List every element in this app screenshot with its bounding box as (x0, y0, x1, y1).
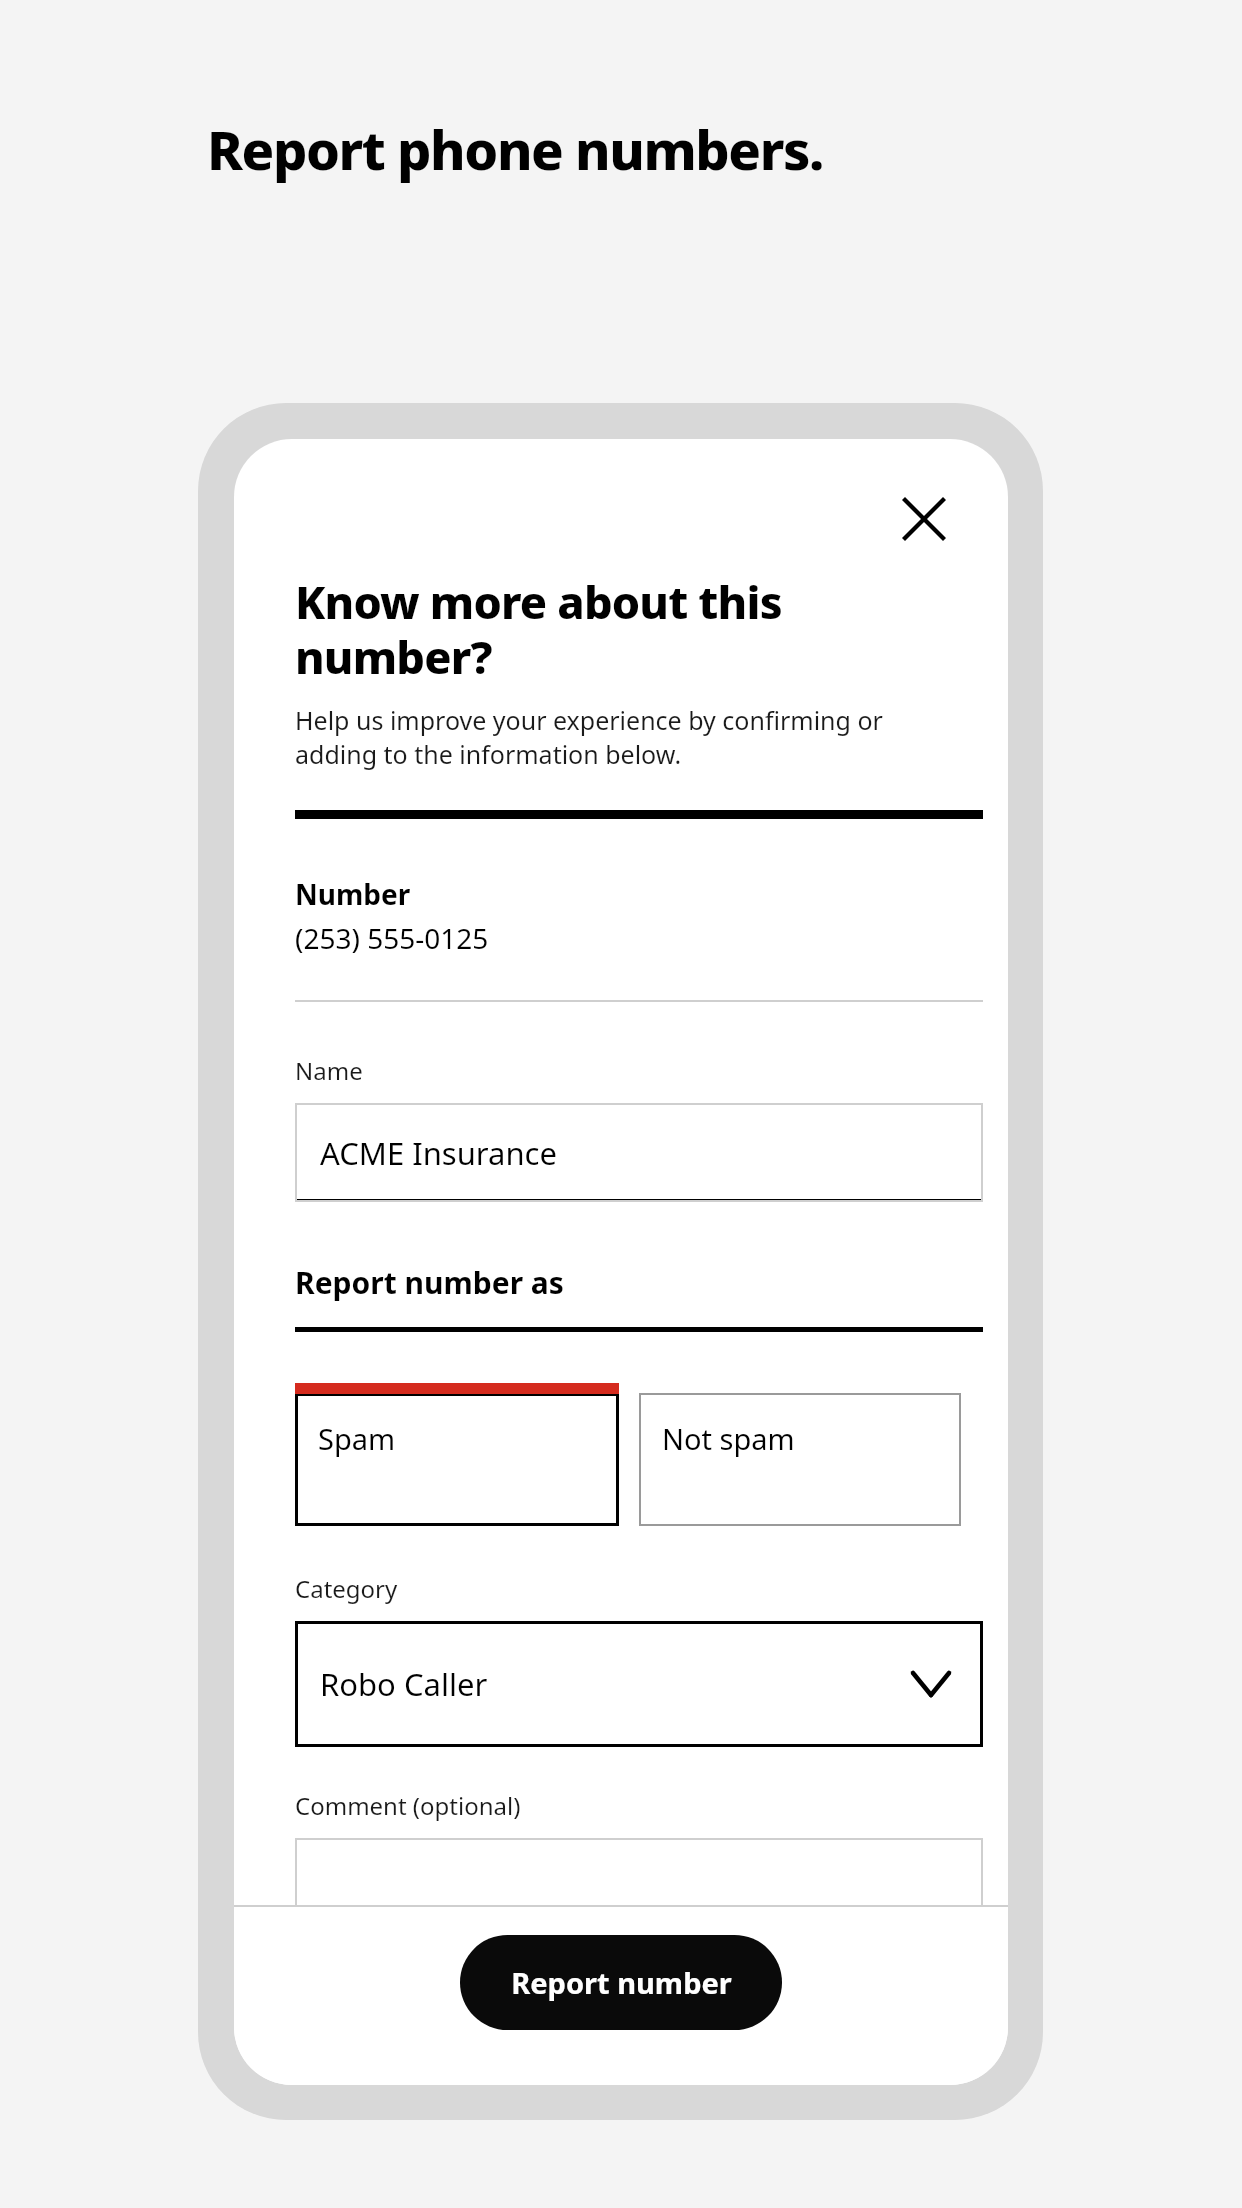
staticText: Name (295, 1054, 363, 1087)
staticText: Number (295, 875, 411, 913)
button[interactable]: Robo Caller (295, 1621, 983, 1747)
staticText: Know more about this number? (295, 571, 782, 687)
staticText: ACME Insurance (320, 1132, 557, 1174)
button[interactable]: Report number (460, 1935, 782, 2030)
staticText: Category (295, 1572, 398, 1605)
staticText: Help us improve your experience by confi… (295, 703, 883, 771)
button[interactable]: Not spam (639, 1393, 961, 1526)
staticText: Comment (optional) (295, 1789, 521, 1822)
button[interactable]: Close (896, 491, 952, 547)
staticText: Not spam (662, 1419, 795, 1458)
button[interactable]: ACME Insurance (295, 1103, 983, 1202)
staticText: (253) 555-0125 (295, 919, 489, 957)
staticText: Spam (318, 1419, 396, 1458)
staticText: Report phone numbers. (207, 112, 824, 186)
staticText: Report number as (295, 1262, 564, 1303)
staticText: Report number (511, 1963, 732, 2002)
button[interactable]: Spam (295, 1383, 619, 1526)
staticText: Robo Caller (320, 1663, 488, 1705)
